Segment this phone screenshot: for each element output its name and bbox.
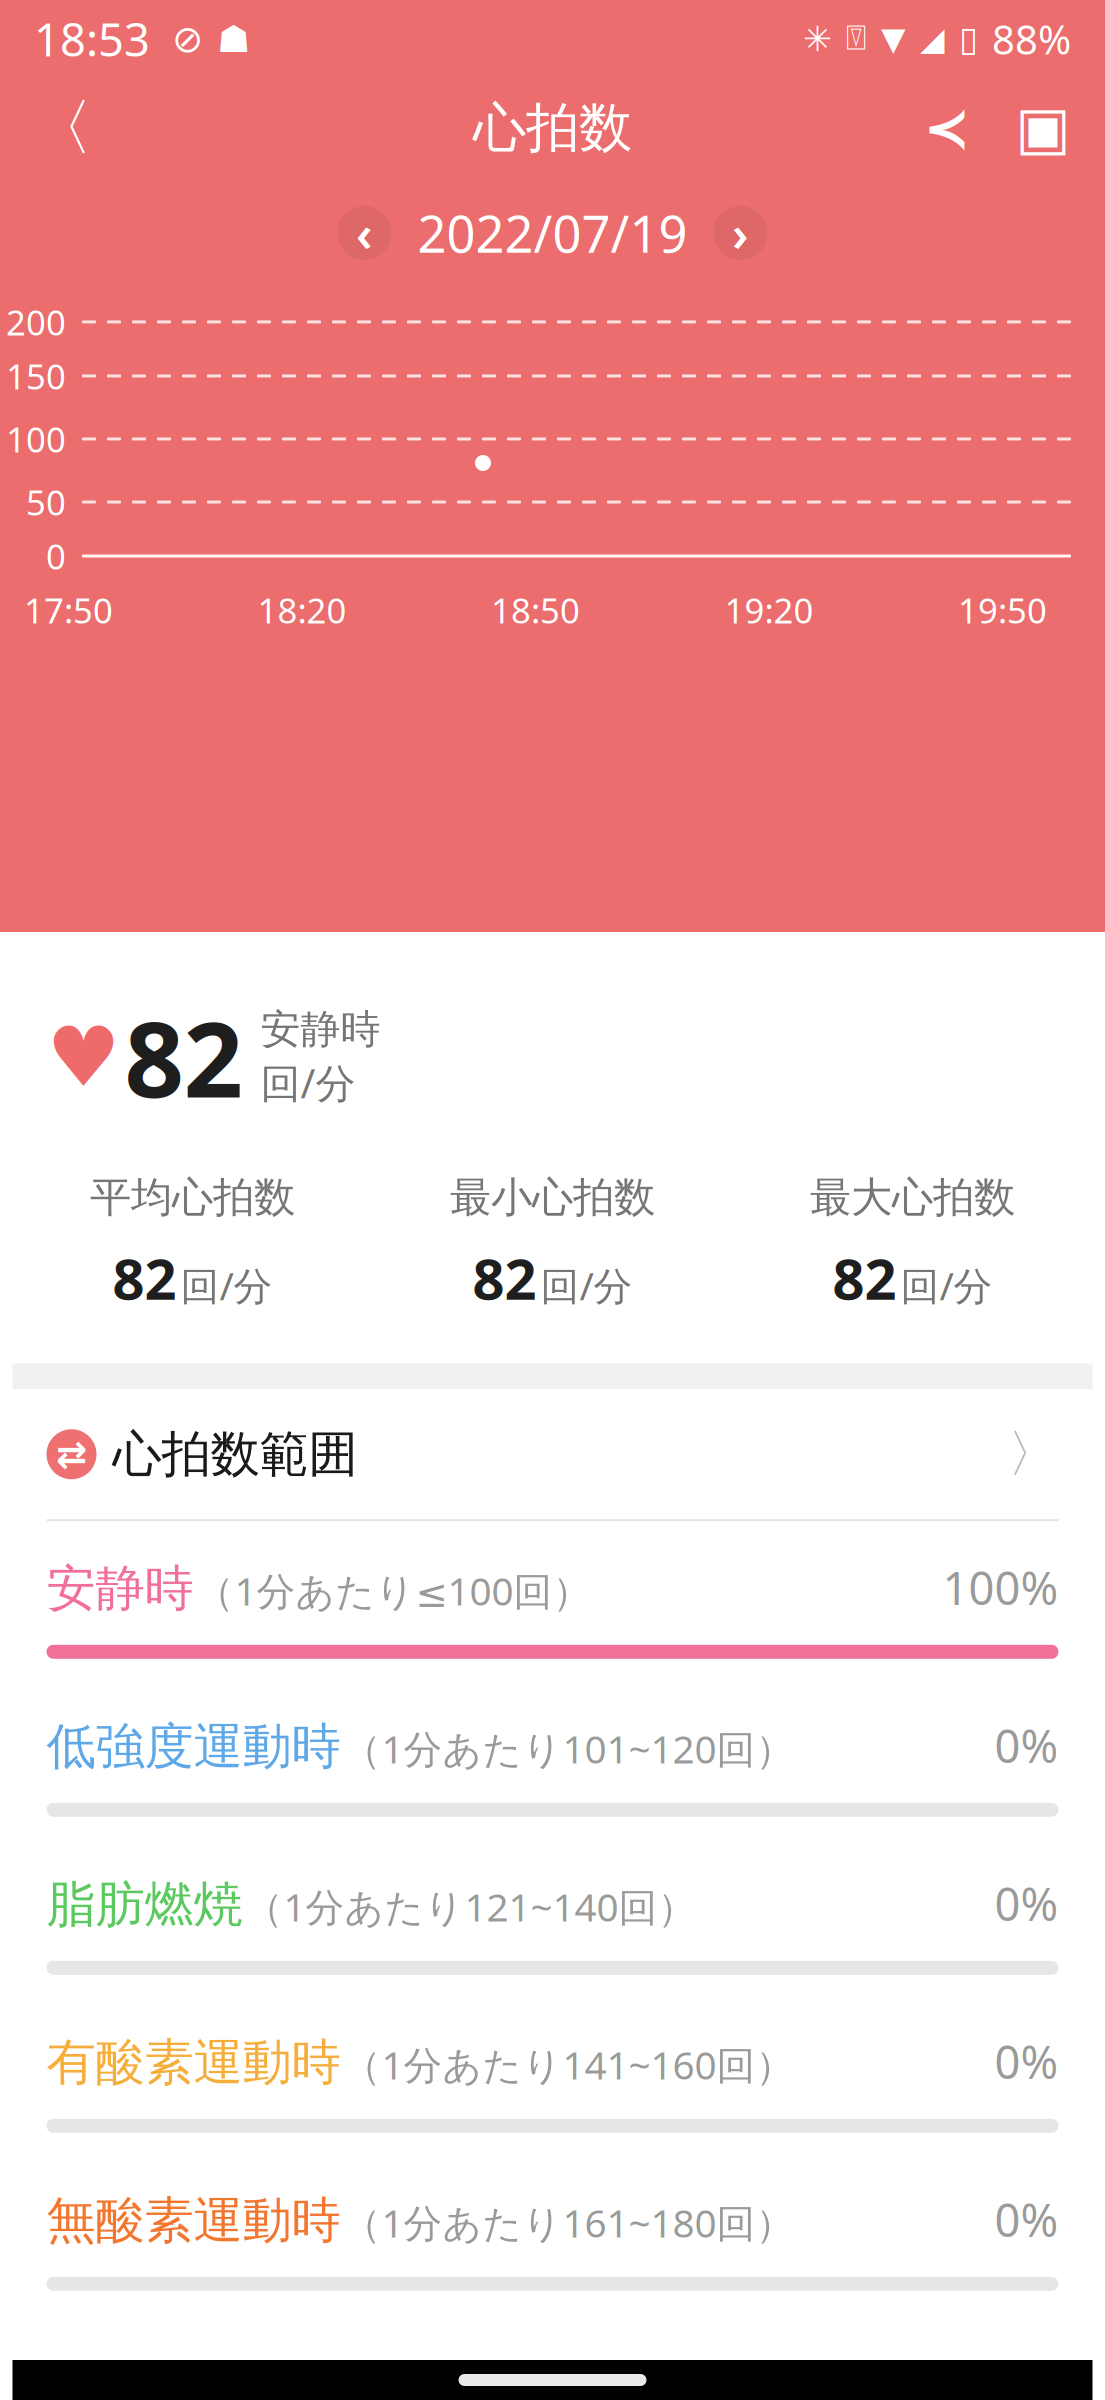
staticText: 有酸素運動時 [46,2032,340,2093]
staticText: ⇄ [56,1433,87,1475]
staticText: › [732,201,749,265]
staticText: ✳ [803,19,832,59]
staticText: 100% [942,1557,1058,1617]
staticText: ‹ [356,201,373,265]
staticText: 回/分 [180,1260,272,1311]
staticText: 100 [6,416,66,462]
staticText: ▣ [1015,95,1070,161]
staticText: 安静時 [46,1558,193,1619]
staticText: 安静時 [260,1005,380,1054]
staticText: ⊘ [172,18,203,60]
staticText: 平均心拍数 [90,1172,295,1223]
staticText: 最大心拍数 [810,1172,1015,1223]
staticText: （1分あたり121~140回） [244,1881,696,1932]
staticText: 心拍数 [473,95,632,161]
staticText: 150 [6,353,66,399]
staticText: 0% [994,2189,1058,2249]
staticText: ♥ [46,1010,120,1104]
staticText: 18:53 [34,9,150,69]
staticText: 50 [17,479,66,525]
staticText: 82 [472,1241,536,1315]
staticText: 82 [832,1241,896,1315]
staticText: 〈 [31,90,92,166]
staticText: 回/分 [260,1056,355,1109]
staticText: （1分あたり141~160回） [342,2039,794,2090]
staticText: 18:50 [491,587,580,633]
button[interactable]: Back [14,80,110,176]
staticText: 0% [994,1873,1058,1933]
button[interactable]: Next day [713,206,767,260]
staticText: 0% [994,1715,1058,1775]
staticText: 心拍数範囲 [112,1424,357,1484]
staticText: 低強度運動時 [46,1716,340,1777]
staticText: 17:50 [24,587,113,633]
staticText: ≺ [923,96,970,160]
staticText: （1分あたり161~180回） [342,2197,794,2248]
button[interactable]: Previous day [337,206,391,260]
staticText: （1分あたり≤100回） [195,1565,591,1616]
staticText: 最小心拍数 [450,1172,655,1223]
staticText: ▼ [881,21,906,57]
staticText: 脂肪燃焼 [46,1874,242,1935]
button[interactable]: Share [899,80,995,176]
button[interactable]: Calendar [995,80,1091,176]
staticText: 82 [112,1241,176,1315]
staticText: 18:20 [257,587,346,633]
staticText: ☗ [217,18,250,60]
staticText: 88% [992,12,1071,65]
staticText: （1分あたり101~120回） [342,1723,794,1774]
staticText: 19:50 [958,587,1047,633]
button[interactable]: ⇄ [12,1389,1092,1519]
staticText: 200 [6,299,66,345]
staticText: 0 [28,533,66,579]
staticText: ◢ [920,21,945,57]
staticText: 回/分 [540,1260,632,1311]
staticText: ▯ [959,19,978,59]
staticText: 0% [994,2031,1058,2091]
staticText: 〉 [1007,1423,1058,1485]
staticText: ⍔ [846,22,867,56]
staticText: 無酸素運動時 [46,2190,340,2251]
staticText: 回/分 [900,1260,992,1311]
staticText: 2022/07/19 [417,199,687,267]
staticText: 19:20 [724,587,813,633]
staticText: 82 [124,988,242,1126]
